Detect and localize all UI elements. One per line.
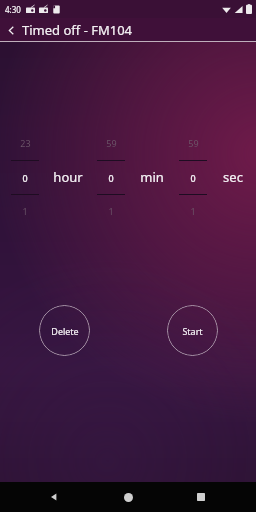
staticText: 0	[22, 172, 28, 184]
staticText: 1	[190, 205, 196, 217]
button[interactable]: 59	[90, 137, 132, 217]
button[interactable]: 23	[4, 137, 46, 217]
button[interactable]: Recent apps	[189, 485, 213, 509]
button[interactable]: Start	[167, 305, 218, 356]
staticText: 59	[188, 137, 199, 149]
staticText: 4:30	[5, 4, 21, 15]
button[interactable]: 59	[172, 137, 214, 217]
staticText: 59	[106, 137, 117, 149]
staticText: Start	[182, 325, 203, 337]
staticText: 0	[190, 172, 196, 184]
button[interactable]: Delete	[39, 305, 90, 356]
staticText: Delete	[51, 325, 79, 337]
staticText: 1	[108, 205, 114, 217]
staticText: min	[140, 168, 164, 186]
staticText: 0	[108, 172, 114, 184]
staticText: 1	[22, 205, 28, 217]
button[interactable]: Back	[42, 485, 66, 509]
staticText: sec	[223, 168, 243, 186]
button[interactable]: Home	[116, 485, 140, 509]
staticText: Timed off - FM104	[22, 21, 133, 39]
staticText: 23	[20, 137, 31, 149]
staticText: hour	[53, 168, 83, 186]
button[interactable]: Back	[0, 19, 22, 41]
